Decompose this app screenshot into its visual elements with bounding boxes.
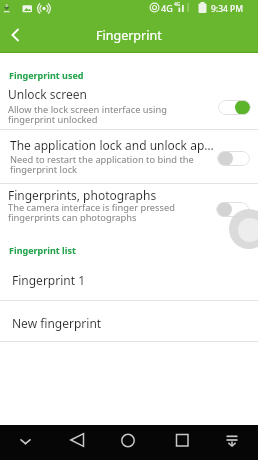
staticText: Fingerprint used	[9, 69, 84, 81]
staticText: 4G	[174, 1, 181, 8]
button[interactable]	[206, 425, 258, 460]
button[interactable]	[51, 425, 102, 460]
button[interactable]	[216, 202, 249, 217]
button[interactable]	[217, 151, 250, 166]
staticText: New fingerprint	[12, 315, 102, 331]
staticText: Allow the lock screen interface using fi…	[8, 103, 167, 126]
button[interactable]	[0, 184, 258, 228]
button[interactable]	[218, 100, 251, 115]
button[interactable]	[0, 425, 51, 460]
staticText: Fingerprints, photographs	[8, 187, 157, 203]
staticText: 9:34 PM	[211, 3, 244, 15]
button[interactable]	[0, 301, 258, 341]
staticText: The camera interface is finger pressed f…	[8, 201, 175, 224]
button[interactable]	[0, 82, 258, 129]
button[interactable]	[102, 425, 154, 460]
staticText: Fingerprint	[96, 27, 162, 44]
staticText: Fingerprint list	[9, 244, 76, 256]
button[interactable]	[0, 262, 258, 300]
staticText: Unlock screen	[8, 86, 88, 102]
staticText: Fingerprint 1	[12, 272, 86, 288]
button[interactable]	[4, 24, 32, 48]
staticText: 4G	[161, 2, 173, 14]
button[interactable]	[0, 130, 258, 183]
staticText: The application lock and unlock applicat…	[10, 137, 221, 153]
staticText: Need to restart the application to bind …	[10, 153, 194, 176]
button[interactable]	[154, 425, 206, 460]
